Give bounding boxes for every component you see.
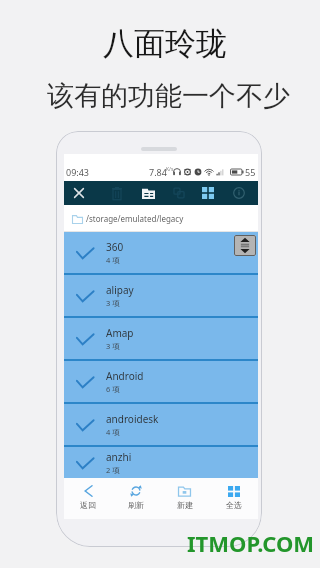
- staticText: 八面玲珑: [103, 24, 227, 63]
- button[interactable]: Delete: [105, 181, 129, 205]
- staticText: 新建: [177, 500, 193, 510]
- button[interactable]: 返回: [64, 478, 112, 519]
- staticText: 55: [245, 166, 256, 178]
- button[interactable]: 刷新: [112, 478, 160, 519]
- staticText: anzhi: [106, 450, 132, 464]
- staticText: 4 项: [106, 255, 120, 265]
- staticText: Amap: [106, 326, 134, 340]
- staticText: 4 项: [106, 427, 120, 437]
- staticText: 7.84: [149, 166, 167, 178]
- button[interactable]: 全选: [209, 478, 258, 519]
- button[interactable]: Copy: [167, 181, 191, 205]
- button[interactable]: Android: [64, 361, 258, 402]
- staticText: 6 项: [106, 384, 120, 394]
- button[interactable]: Grid view: [196, 181, 220, 205]
- button[interactable]: alipay: [64, 275, 258, 316]
- staticText: 09:43: [66, 166, 90, 178]
- button[interactable]: anzhi: [64, 447, 258, 478]
- staticText: K/s: [166, 166, 174, 173]
- staticText: ITMOP.COM: [187, 528, 315, 558]
- button[interactable]: androidesk: [64, 404, 258, 445]
- staticText: 返回: [80, 500, 96, 510]
- button[interactable]: Scroll: [234, 235, 256, 256]
- staticText: /storage/emulated/legacy: [86, 213, 184, 224]
- staticText: 360: [106, 240, 124, 254]
- staticText: 刷新: [128, 500, 144, 510]
- staticText: 3 项: [106, 298, 120, 308]
- staticText: alipay: [106, 283, 134, 297]
- staticText: Android: [106, 369, 144, 383]
- staticText: 3 项: [106, 341, 120, 351]
- button[interactable]: 新建: [160, 478, 209, 519]
- button[interactable]: Close: [67, 181, 91, 205]
- button[interactable]: New folder: [136, 181, 160, 205]
- staticText: 2 项: [106, 465, 120, 475]
- button[interactable]: Amap: [64, 318, 258, 359]
- staticText: androidesk: [106, 412, 159, 426]
- staticText: 全选: [226, 500, 242, 510]
- button[interactable]: 360: [64, 232, 258, 273]
- button[interactable]: Info: [227, 181, 251, 205]
- staticText: 该有的功能一个不少: [47, 79, 290, 113]
